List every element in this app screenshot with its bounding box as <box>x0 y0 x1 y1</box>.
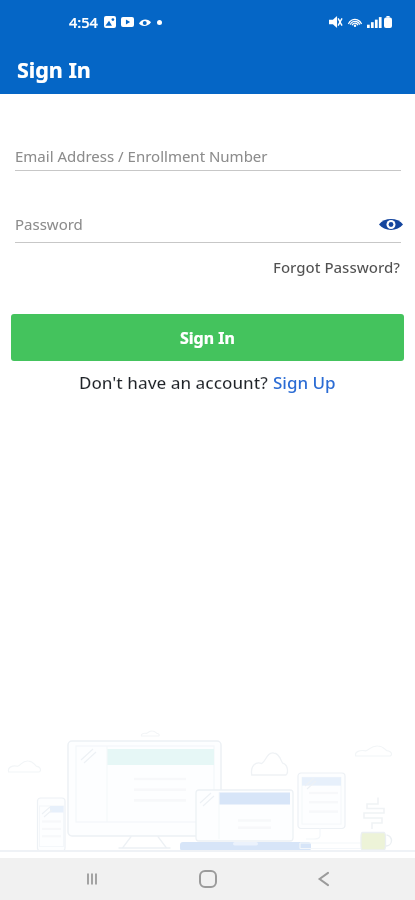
staticText: Password <box>15 214 83 234</box>
button[interactable]: Home <box>185 858 231 900</box>
button[interactable]: Sign In <box>11 314 404 361</box>
button[interactable]: Sign Up <box>273 371 336 394</box>
button[interactable]: Back <box>300 858 346 900</box>
staticText: Email Address / Enrollment Number <box>15 146 268 166</box>
staticText: Sign Up <box>273 371 336 394</box>
button[interactable]: Show password <box>378 213 404 235</box>
button[interactable]: Recents <box>69 858 115 900</box>
staticText: Sign In <box>17 55 91 84</box>
button[interactable]: Forgot Password? <box>273 257 415 277</box>
staticText: Don't have an account? <box>79 371 273 394</box>
staticText: 4:54 <box>69 12 98 32</box>
staticText: Forgot Password? <box>273 257 401 277</box>
staticText: Sign In <box>180 327 235 349</box>
